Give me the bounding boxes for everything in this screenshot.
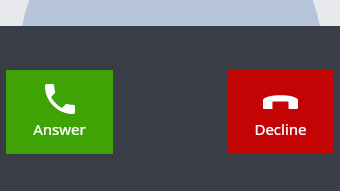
staticText: Answer [33, 119, 86, 139]
button[interactable]: Decline [227, 70, 334, 154]
button[interactable]: Answer [6, 70, 113, 154]
staticText: Decline [254, 119, 307, 139]
